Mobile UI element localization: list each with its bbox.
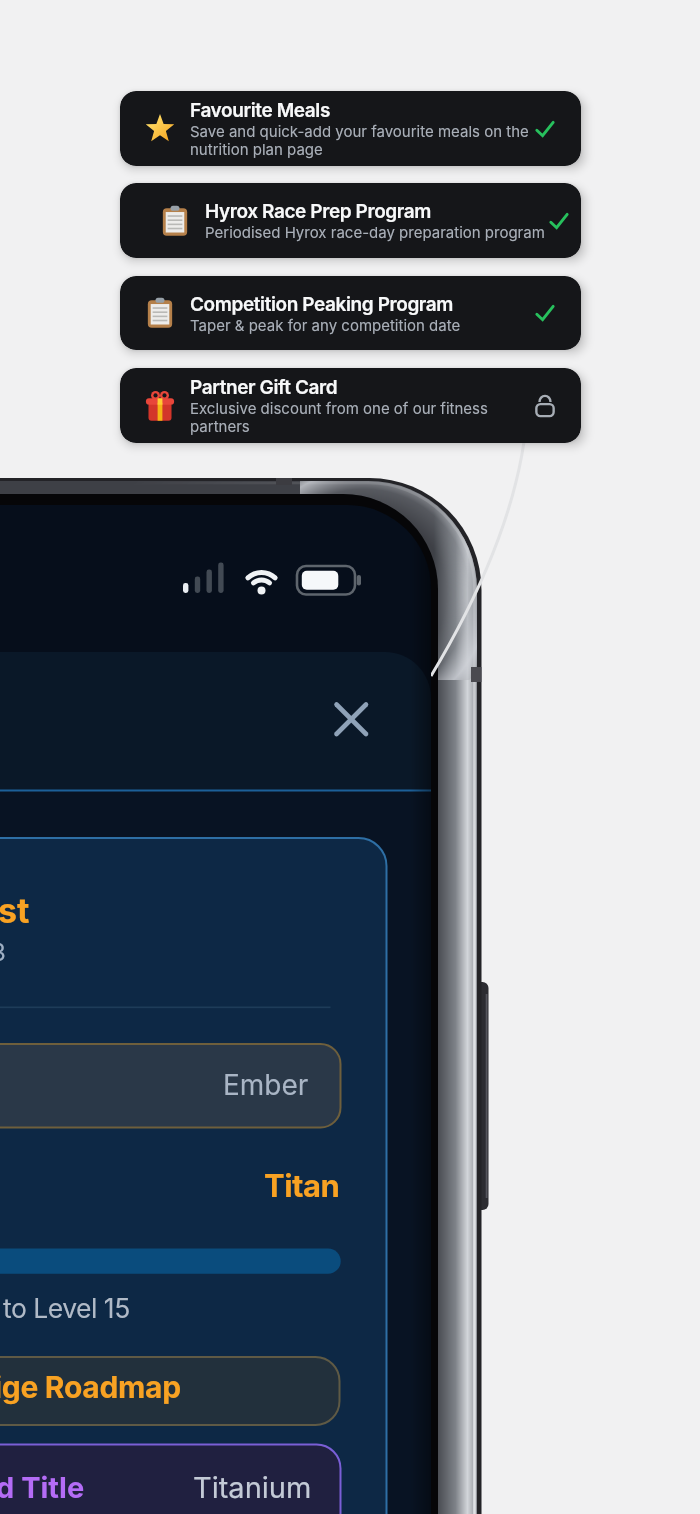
- button[interactable]: Competition Peaking Program: [120, 276, 581, 350]
- button[interactable]: Partner Gift Card: [120, 368, 581, 443]
- staticText: Favourite Meals: [190, 99, 330, 122]
- button[interactable]: Hyrox Race Prep Program: [120, 183, 581, 258]
- staticText: st: [0, 890, 30, 931]
- staticText: ige Roadmap: [0, 1369, 181, 1405]
- staticText: Hyrox Race Prep Program: [205, 200, 431, 223]
- staticText: Competition Peaking Program: [190, 293, 454, 316]
- staticText: Exclusive discount from one of our fitne…: [190, 399, 488, 436]
- button[interactable]: [329, 697, 373, 741]
- button[interactable]: [0, 1444, 341, 1514]
- staticText: 3: [0, 938, 6, 967]
- staticText: Ember: [223, 1068, 309, 1102]
- staticText: Titanium: [193, 1470, 312, 1505]
- staticText: d Title: [0, 1470, 85, 1505]
- button[interactable]: [0, 1357, 340, 1425]
- button[interactable]: Favourite Meals: [120, 91, 581, 166]
- button[interactable]: [0, 1044, 341, 1128]
- staticText: Periodised Hyrox race-day preparation pr…: [205, 223, 545, 241]
- staticText: Taper & peak for any competition date: [190, 316, 461, 334]
- staticText: Save and quick-add your favourite meals …: [190, 122, 529, 159]
- staticText: to Level 15: [3, 1292, 130, 1324]
- staticText: Partner Gift Card: [190, 376, 338, 399]
- staticText: Titan: [264, 1167, 340, 1205]
